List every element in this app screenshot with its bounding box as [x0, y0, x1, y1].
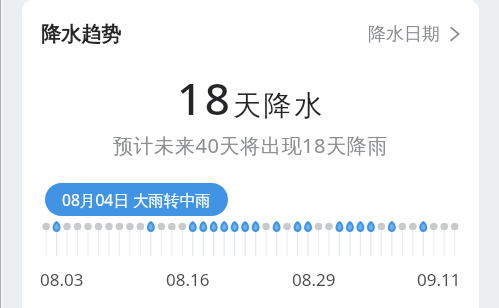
staticText: 09.11 [417, 268, 461, 291]
staticText: 08.16 [166, 268, 210, 291]
button[interactable]: 降水趋势 [41, 22, 121, 47]
other: Select precipitation date [450, 27, 459, 41]
staticText: 08.29 [292, 268, 336, 291]
button[interactable]: 08月04日 大雨转中雨 [45, 183, 228, 216]
staticText: 18 [177, 68, 233, 128]
staticText: 降水趋势 [41, 22, 121, 47]
staticText: 08月04日 大雨转中雨 [62, 189, 211, 210]
staticText: 天降水 [233, 88, 326, 123]
staticText: 08.03 [40, 268, 84, 291]
staticText: 降水日期 [368, 23, 440, 46]
button[interactable]: 降水日期 [368, 23, 459, 46]
staticText: 预计未来40天将出现18天降雨 [22, 132, 479, 159]
